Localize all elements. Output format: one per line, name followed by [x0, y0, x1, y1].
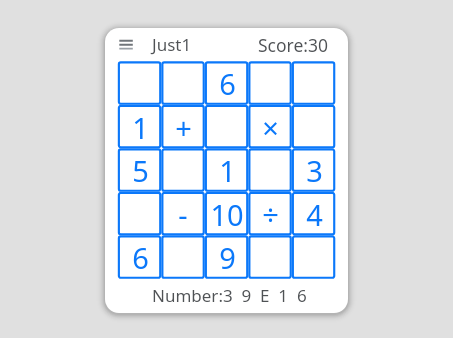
button[interactable]: Cell row 4 column 1: [118, 192, 162, 236]
button[interactable]: Cell row 1 column 1: [118, 61, 162, 105]
staticText: 6: [219, 64, 236, 103]
staticText: 5: [132, 151, 149, 190]
button[interactable]: Cell row 2 column 5: [292, 105, 336, 149]
button[interactable]: Cell row 2 column 2: [161, 105, 205, 149]
button[interactable]: Cell row 1 column 2: [161, 61, 205, 105]
button[interactable]: Cell row 3 column 3: [205, 148, 249, 192]
staticText: 10: [210, 195, 244, 234]
button[interactable]: Cell row 1 column 3: [205, 61, 249, 105]
staticText: 6: [132, 238, 149, 277]
button[interactable]: Cell row 3 column 2: [161, 148, 205, 192]
staticText: Score:30: [258, 33, 329, 57]
button[interactable]: Open navigation menu: [108, 30, 141, 58]
staticText: 1: [132, 108, 149, 147]
button[interactable]: Cell row 3 column 4: [248, 148, 292, 192]
staticText: ÷: [262, 195, 279, 234]
staticText: Just1: [152, 33, 192, 56]
button[interactable]: Cell row 3 column 1: [118, 148, 162, 192]
button[interactable]: Cell row 5 column 1: [118, 235, 162, 279]
button[interactable]: Cell row 2 column 1: [118, 105, 162, 149]
button[interactable]: Cell row 4 column 2: [161, 192, 205, 236]
button[interactable]: Cell row 4 column 5: [292, 192, 336, 236]
button[interactable]: Cell row 5 column 3: [205, 235, 249, 279]
button[interactable]: Cell row 1 column 5: [292, 61, 336, 105]
button[interactable]: Cell row 4 column 3: [205, 192, 249, 236]
button[interactable]: Cell row 5 column 2: [161, 235, 205, 279]
staticText: 3: [306, 151, 323, 190]
button[interactable]: Cell row 5 column 4: [248, 235, 292, 279]
staticText: 4: [306, 195, 323, 234]
button[interactable]: Cell row 5 column 5: [292, 235, 336, 279]
staticText: ×: [262, 108, 279, 147]
button[interactable]: Cell row 2 column 4: [248, 105, 292, 149]
staticText: -: [178, 195, 188, 234]
button[interactable]: Cell row 4 column 4: [248, 192, 292, 236]
button[interactable]: Cell row 3 column 5: [292, 148, 336, 192]
staticText: Number:3 9 E 1 6: [152, 284, 307, 307]
button[interactable]: Cell row 1 column 4: [248, 61, 292, 105]
button[interactable]: Cell row 2 column 3: [205, 105, 249, 149]
staticText: 1: [219, 151, 236, 190]
staticText: +: [175, 108, 192, 147]
staticText: 9: [219, 238, 236, 277]
